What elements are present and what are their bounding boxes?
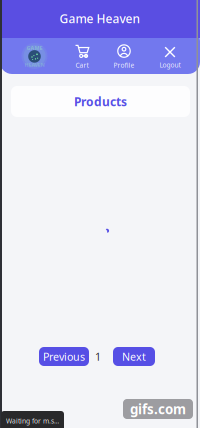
staticText: Next — [122, 349, 146, 364]
staticText: 1 — [95, 349, 101, 364]
button[interactable]: Game Heaven home — [21, 44, 47, 68]
staticText: GAME — [26, 44, 42, 52]
button[interactable]: Next — [113, 347, 155, 366]
button[interactable]: Products — [11, 86, 190, 117]
button[interactable]: Cart — [62, 42, 102, 72]
button[interactable]: Previous — [39, 347, 89, 366]
button[interactable]: Logout — [150, 43, 190, 73]
staticText: gifs.com — [130, 400, 186, 418]
staticText: Logout — [159, 61, 180, 69]
staticText: Profile — [113, 61, 134, 70]
staticText: Products — [74, 93, 127, 109]
button[interactable]: Profile — [104, 42, 144, 72]
staticText: Cart — [75, 61, 88, 70]
staticText: Previous — [43, 349, 85, 364]
staticText: Waiting for m.s… — [6, 417, 59, 425]
staticText: Game Heaven — [59, 10, 140, 26]
staticText: HEAVEN — [24, 61, 44, 68]
